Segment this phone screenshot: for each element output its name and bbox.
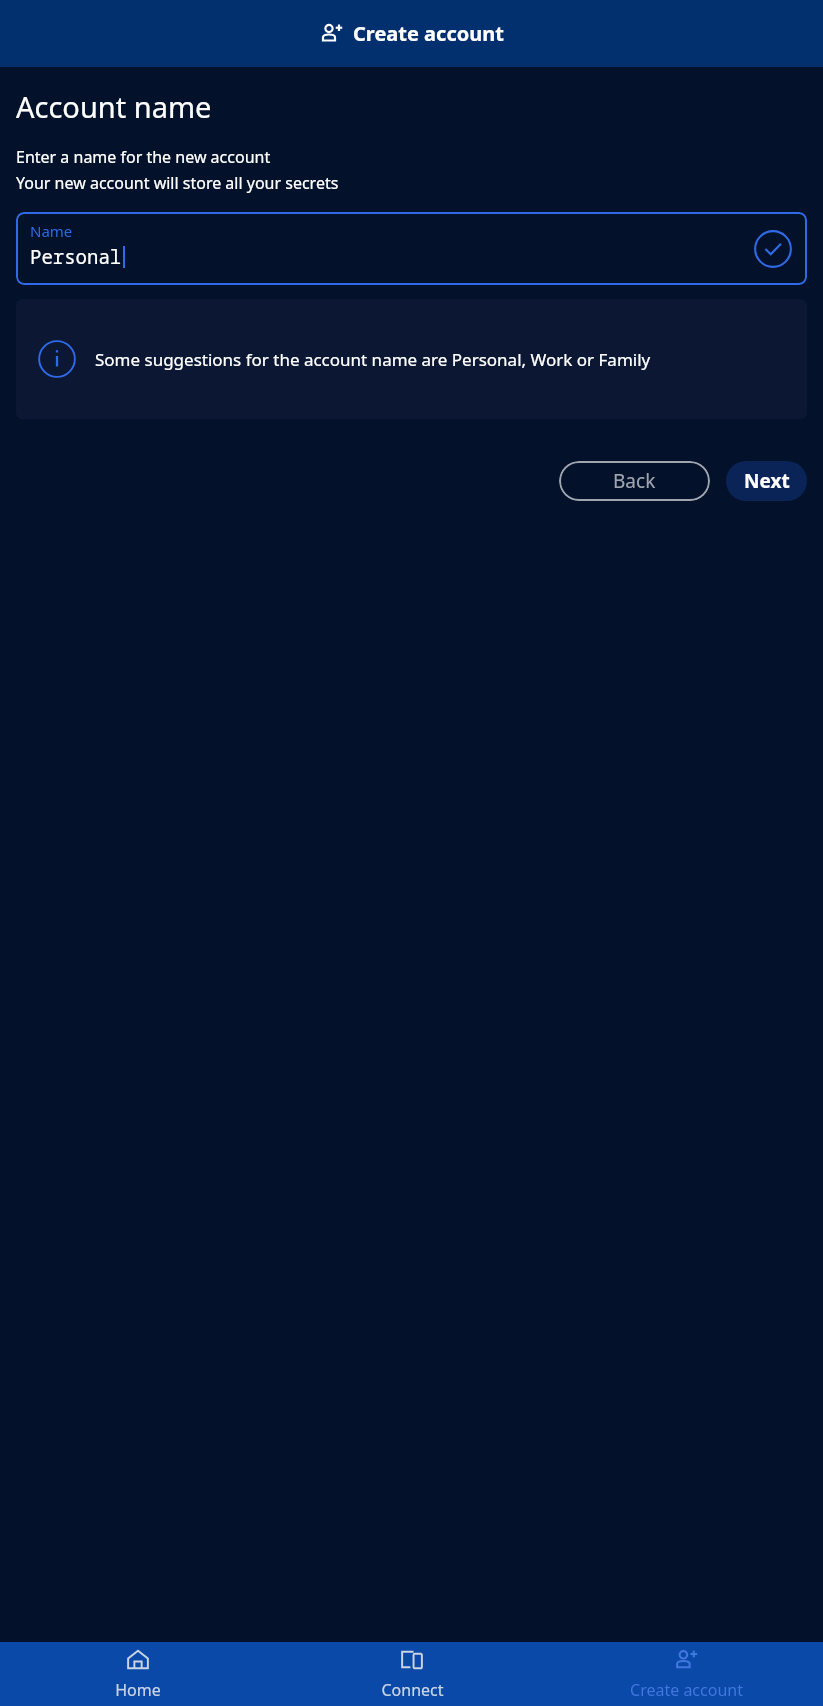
staticText: Next — [744, 468, 790, 494]
staticText: Some suggestions for the account name ar… — [95, 348, 651, 371]
staticText: Personal — [30, 244, 122, 270]
button[interactable]: Home — [0, 1642, 275, 1706]
staticText: Connect — [381, 1679, 444, 1701]
staticText: Create account — [353, 20, 504, 47]
staticText: Account name — [16, 87, 212, 126]
other: Name is valid — [754, 230, 792, 268]
staticText: Back — [613, 468, 656, 494]
staticText: Create account — [630, 1679, 743, 1701]
button[interactable]: Name — [16, 212, 807, 285]
button[interactable]: Back — [559, 461, 710, 501]
staticText: Home — [115, 1679, 161, 1701]
staticText: Your new account will store all your sec… — [16, 172, 339, 194]
staticText: Enter a name for the new account — [16, 146, 271, 168]
staticText: Name — [30, 221, 73, 241]
button[interactable]: Next — [726, 461, 807, 501]
other: Create account — [319, 21, 344, 46]
button[interactable]: Connect — [275, 1642, 549, 1706]
button[interactable]: Create account — [549, 1642, 823, 1706]
